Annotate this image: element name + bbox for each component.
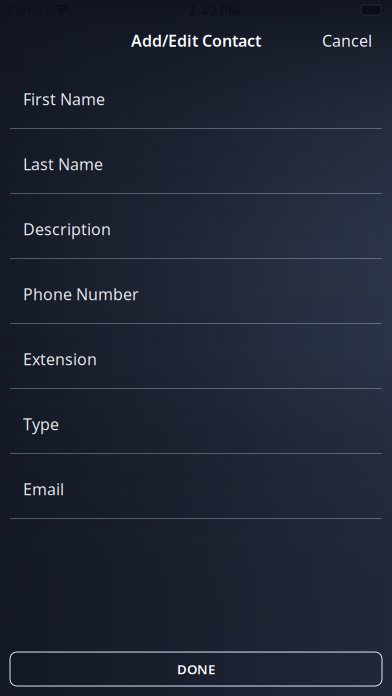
staticText: 2:42 PM <box>189 1 240 19</box>
staticText: Cancel <box>322 30 372 51</box>
staticText: Phone Number <box>23 283 139 305</box>
button[interactable]: First Name <box>0 64 392 129</box>
staticText: Type <box>23 413 59 435</box>
button[interactable]: Extension <box>0 324 392 389</box>
staticText: First Name <box>23 88 105 110</box>
staticText: Email <box>23 478 64 500</box>
button[interactable]: Last Name <box>0 129 392 194</box>
staticText: DONE <box>177 660 215 678</box>
button[interactable]: Email <box>0 454 392 519</box>
button[interactable]: Cancel <box>302 20 392 64</box>
button[interactable]: Type <box>0 389 392 454</box>
button[interactable]: Description <box>0 194 392 259</box>
staticText: Description <box>23 218 111 240</box>
staticText: Extension <box>23 348 97 370</box>
staticText: Add/Edit Contact <box>131 30 261 51</box>
button[interactable]: Phone Number <box>0 259 392 324</box>
button[interactable]: DONE <box>10 652 382 686</box>
staticText: Last Name <box>23 153 103 175</box>
